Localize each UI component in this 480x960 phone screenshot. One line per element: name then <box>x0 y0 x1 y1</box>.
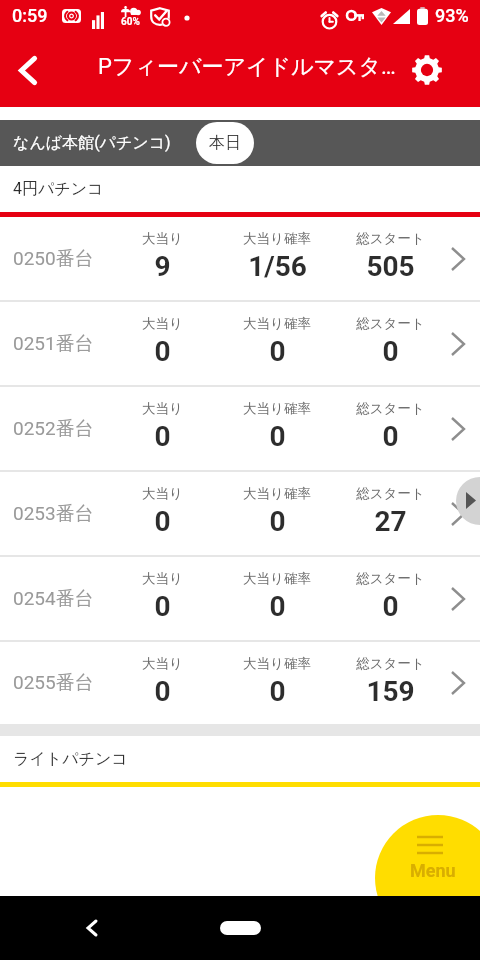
staticText: 0 <box>269 420 286 453</box>
staticText: 159 <box>366 675 415 708</box>
staticText: 1/56 <box>248 250 307 283</box>
staticText: ライトパチンコ <box>13 749 128 769</box>
staticText: 大当り <box>142 655 183 672</box>
staticText: 大当り <box>142 485 183 502</box>
staticText: 総スタート <box>356 400 425 417</box>
staticText: 0252番台 <box>13 417 94 441</box>
staticText: 0 <box>269 505 286 538</box>
button[interactable]: 0254番台 <box>0 557 480 642</box>
staticText: 93% <box>435 5 469 26</box>
staticText: 60% <box>121 16 140 28</box>
staticText: なんば本館(パチンコ) <box>13 133 171 153</box>
staticText: 大当り確率 <box>243 400 311 417</box>
button[interactable]: Back <box>0 42 56 98</box>
staticText: 大当り <box>142 230 183 247</box>
staticText: 0 <box>269 590 286 623</box>
staticText: 0 <box>154 420 171 453</box>
staticText: 505 <box>366 250 415 283</box>
staticText: Menu <box>410 860 456 881</box>
staticText: 大当り確率 <box>243 570 311 587</box>
staticText: 大当り <box>142 400 183 417</box>
button[interactable]: Settings <box>399 42 455 98</box>
button[interactable]: 本日 <box>196 122 254 164</box>
button[interactable]: 0250番台 <box>0 217 480 302</box>
staticText: 0 <box>382 335 399 368</box>
button[interactable]: 0252番台 <box>0 387 480 472</box>
staticText: 0255番台 <box>13 671 94 695</box>
button[interactable]: 0251番台 <box>0 302 480 387</box>
staticText: 大当り確率 <box>243 655 311 672</box>
staticText: 27 <box>374 505 407 538</box>
button[interactable]: Home <box>220 921 261 935</box>
button[interactable]: Back <box>68 904 116 952</box>
staticText: 0 <box>154 590 171 623</box>
staticText: 0 <box>382 590 399 623</box>
staticText: 総スタート <box>356 315 425 332</box>
button[interactable]: 0253番台 <box>0 472 480 557</box>
button[interactable]: 0255番台 <box>0 642 480 724</box>
staticText: 総スタート <box>356 485 425 502</box>
staticText: 0 <box>382 420 399 453</box>
staticText: 0 <box>269 675 286 708</box>
staticText: 大当り確率 <box>243 230 311 247</box>
staticText: 大当り確率 <box>243 485 311 502</box>
staticText: 総スタート <box>356 570 425 587</box>
staticText: 0254番台 <box>13 587 94 611</box>
staticText: Pフィーバーアイドルマスタ… <box>98 53 396 81</box>
staticText: 総スタート <box>356 230 425 247</box>
staticText: 0 <box>154 675 171 708</box>
staticText: 大当り <box>142 315 183 332</box>
staticText: 0:59 <box>12 5 48 26</box>
staticText: 0250番台 <box>13 247 94 271</box>
staticText: 0 <box>269 335 286 368</box>
staticText: 0 <box>154 335 171 368</box>
button[interactable]: Fast scroll <box>456 477 480 525</box>
staticText: 本日 <box>209 133 241 153</box>
staticText: 大当り確率 <box>243 315 311 332</box>
staticText: 総スタート <box>356 655 425 672</box>
staticText: 0253番台 <box>13 502 94 526</box>
staticText: 9 <box>154 250 171 283</box>
staticText: 0251番台 <box>13 332 94 356</box>
staticText: 0 <box>154 505 171 538</box>
button[interactable]: Menu <box>375 815 480 941</box>
staticText: 4円パチンコ <box>13 179 104 199</box>
staticText: 大当り <box>142 570 183 587</box>
